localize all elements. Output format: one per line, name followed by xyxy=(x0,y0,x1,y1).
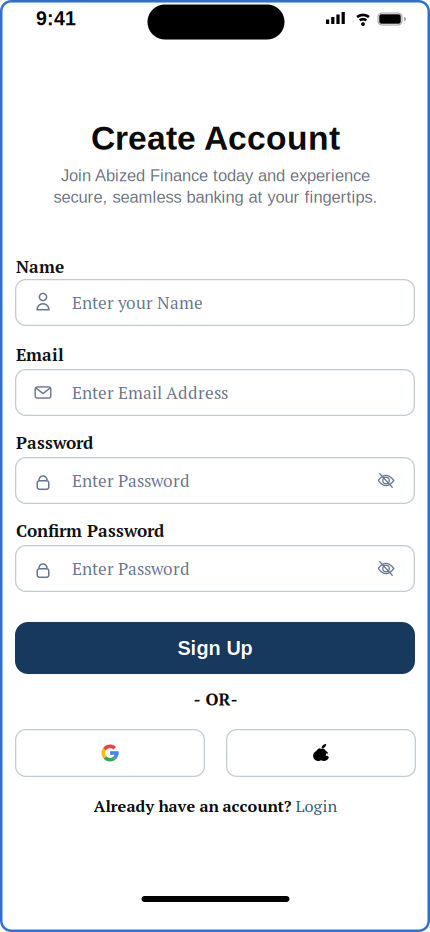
staticText: Email xyxy=(16,343,64,366)
staticText: Confirm Password xyxy=(16,519,164,542)
staticText: Password xyxy=(16,431,93,454)
staticText: 9:41 xyxy=(36,8,76,29)
staticText: Join Abized Finance today and experience xyxy=(61,166,370,185)
staticText: Login xyxy=(295,795,337,817)
staticText: Already have an account? xyxy=(93,795,291,817)
staticText: Enter Password xyxy=(72,557,190,580)
staticText: Create Account xyxy=(91,119,340,157)
staticText: Enter your Name xyxy=(72,291,203,314)
staticText: Name xyxy=(16,255,64,278)
staticText: - OR- xyxy=(193,688,237,710)
staticText: Enter Email Address xyxy=(72,381,228,404)
staticText: Sign Up xyxy=(177,637,252,659)
staticText: Enter Password xyxy=(72,469,190,492)
staticText: secure, seamless banking at your fingert… xyxy=(53,188,377,206)
